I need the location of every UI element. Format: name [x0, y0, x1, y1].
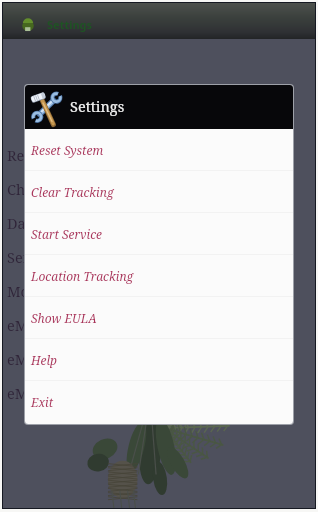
- button[interactable]: Database: [7, 206, 315, 240]
- staticText: eMail Report: [7, 383, 96, 403]
- staticText: Show EULA: [31, 310, 97, 326]
- staticText: Reset System: [7, 145, 97, 165]
- button[interactable]: Monitor: [7, 274, 315, 308]
- button[interactable]: eMail Log: [7, 308, 315, 342]
- staticText: eMail Data: [7, 349, 82, 369]
- button[interactable]: Exit: [25, 381, 293, 423]
- button[interactable]: Check Tracking: [7, 172, 315, 206]
- other: App icon: [20, 16, 36, 32]
- staticText: Settings: [70, 96, 125, 116]
- staticText: Start Service: [31, 226, 102, 242]
- staticText: eMail Log: [7, 315, 75, 335]
- button[interactable]: Reset System: [7, 138, 315, 172]
- button[interactable]: Show EULA: [25, 297, 293, 339]
- button[interactable]: eMail Report: [7, 376, 315, 410]
- staticText: Help: [31, 352, 58, 368]
- staticText: Monitor: [7, 281, 64, 301]
- button[interactable]: Clear Tracking: [25, 171, 293, 213]
- staticText: Exit: [31, 394, 54, 410]
- staticText: Reset System: [31, 142, 104, 158]
- button[interactable]: Reset System: [25, 129, 293, 171]
- staticText: Clear Tracking: [31, 184, 114, 200]
- button[interactable]: Help: [25, 339, 293, 381]
- staticText: Check Tracking: [7, 179, 114, 199]
- button[interactable]: eMail Data: [7, 342, 315, 376]
- staticText: Settings: [47, 17, 93, 32]
- staticText: Service: [7, 247, 58, 267]
- staticText: Database: [7, 213, 71, 233]
- button[interactable]: Location Tracking: [25, 255, 293, 297]
- button[interactable]: Service: [7, 240, 315, 274]
- button[interactable]: Start Service: [25, 213, 293, 255]
- staticText: Location Tracking: [31, 268, 134, 284]
